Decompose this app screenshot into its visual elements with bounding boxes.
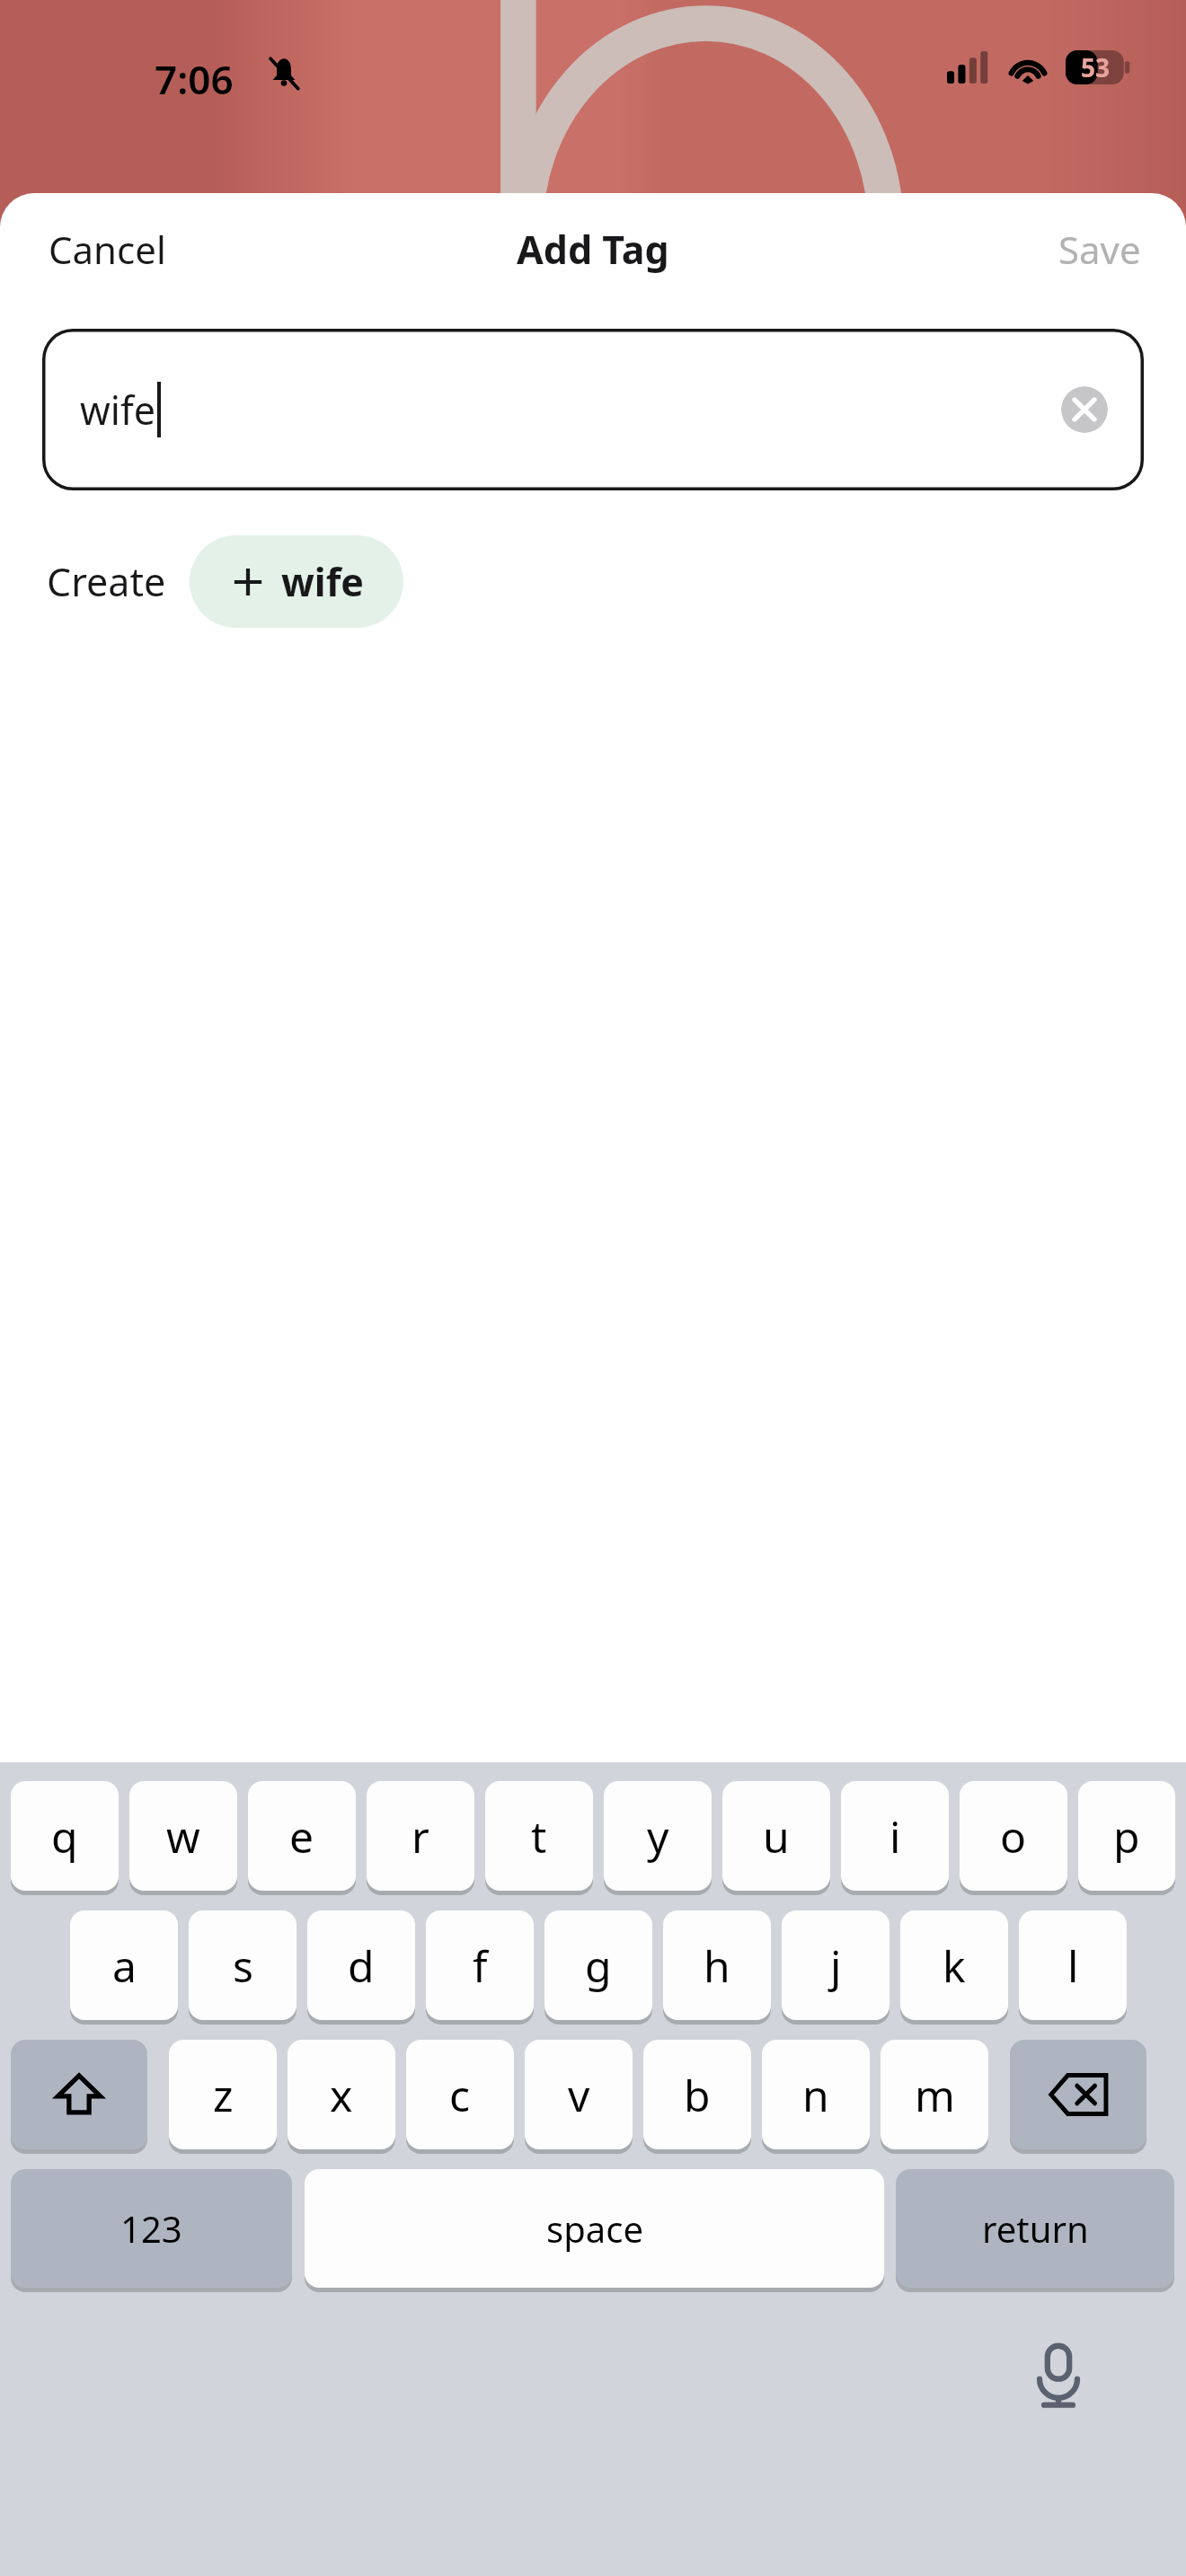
staticText: m (915, 2066, 955, 2124)
staticText: i (889, 1807, 901, 1866)
button[interactable]: l (1019, 1910, 1127, 2020)
button[interactable]: s (189, 1910, 296, 2020)
staticText: h (704, 1936, 730, 1995)
button[interactable]: k (900, 1910, 1008, 2020)
staticText: Create (47, 555, 166, 608)
staticText: k (943, 1936, 966, 1995)
staticText: d (348, 1936, 375, 1995)
button[interactable]: e (248, 1781, 356, 1891)
button[interactable]: t (485, 1781, 593, 1891)
button[interactable]: m (881, 2040, 988, 2149)
staticText: 7:06 (155, 52, 234, 106)
staticText: space (546, 2204, 643, 2253)
staticText: s (233, 1936, 253, 1995)
button[interactable]: Backspace (1010, 2040, 1146, 2149)
button[interactable]: return (896, 2169, 1174, 2288)
button[interactable]: 123 (11, 2169, 292, 2288)
button[interactable]: p (1078, 1781, 1175, 1891)
staticText: p (1113, 1807, 1140, 1866)
staticText: wife (80, 384, 155, 437)
staticText: r (412, 1807, 429, 1866)
staticText: x (330, 2066, 353, 2124)
button[interactable]: Cancel (22, 211, 193, 287)
button[interactable]: n (762, 2040, 870, 2149)
staticText: a (112, 1936, 137, 1995)
button[interactable]: h (663, 1910, 771, 2020)
staticText: n (802, 2066, 829, 2124)
staticText: u (763, 1807, 790, 1866)
staticText: b (684, 2066, 711, 2124)
staticText: z (213, 2066, 234, 2124)
button[interactable]: y (604, 1781, 712, 1891)
staticText: j (830, 1936, 842, 1995)
other: Wi-Fi (1006, 51, 1049, 84)
staticText: f (473, 1936, 488, 1995)
button[interactable]: u (722, 1781, 830, 1891)
other: Silent mode (264, 54, 304, 93)
staticText: o (1000, 1807, 1027, 1866)
button[interactable]: b (643, 2040, 751, 2149)
button[interactable]: Save (1035, 211, 1164, 287)
staticText: l (1067, 1936, 1079, 1995)
button[interactable]: f (426, 1910, 534, 2020)
button[interactable]: v (525, 2040, 633, 2149)
button[interactable]: o (960, 1781, 1067, 1891)
staticText: Cancel (49, 224, 166, 275)
button[interactable]: wife (42, 329, 1144, 490)
staticText: v (568, 2066, 590, 2124)
button[interactable]: w (129, 1781, 237, 1891)
other: Battery 53 percent (1066, 50, 1130, 84)
staticText: e (289, 1807, 314, 1866)
staticText: y (647, 1807, 669, 1866)
other: Cellular signal (947, 51, 988, 84)
button[interactable]: q (11, 1781, 119, 1891)
staticText: c (449, 2066, 471, 2124)
staticText: return (982, 2204, 1089, 2253)
button[interactable]: space (305, 2169, 884, 2288)
staticText: g (585, 1936, 612, 1995)
staticText: w (166, 1807, 200, 1866)
staticText: Save (1058, 224, 1141, 275)
button[interactable]: Voice input (1021, 2335, 1096, 2411)
button[interactable]: Shift (11, 2040, 147, 2149)
button[interactable]: j (782, 1910, 889, 2020)
staticText: 53 (1081, 50, 1111, 84)
staticText: t (531, 1807, 547, 1866)
button[interactable]: d (307, 1910, 415, 2020)
button[interactable]: g (544, 1910, 652, 2020)
button[interactable]: z (169, 2040, 277, 2149)
staticText: Add Tag (517, 223, 669, 276)
staticText: 123 (120, 2204, 182, 2253)
button[interactable]: r (367, 1781, 474, 1891)
button[interactable]: a (70, 1910, 178, 2020)
staticText: wife (281, 555, 364, 608)
button[interactable]: Clear text (1061, 386, 1108, 433)
button[interactable]: x (288, 2040, 395, 2149)
button[interactable]: c (406, 2040, 514, 2149)
button[interactable]: i (841, 1781, 949, 1891)
staticText: q (51, 1807, 78, 1866)
button[interactable]: wife (190, 535, 403, 628)
